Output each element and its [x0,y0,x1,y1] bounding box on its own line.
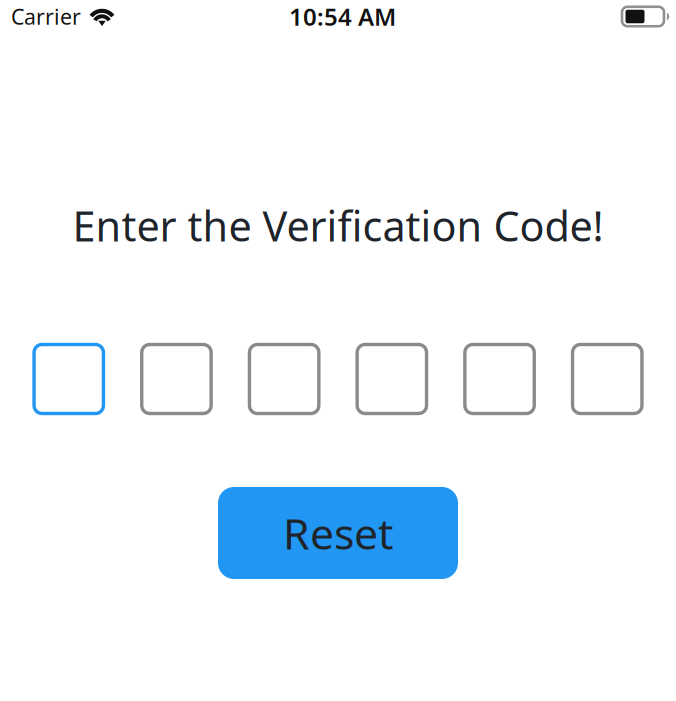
staticText: 10:54 AM [289,1,396,32]
button[interactable]: Verification code digit 5 [465,344,534,413]
button[interactable]: Verification code digit 2 [142,344,211,413]
button[interactable]: Verification code digit 1 [34,344,103,413]
staticText: Enter the Verification Code! [72,198,603,253]
button[interactable]: Verification code digit 6 [572,344,642,413]
staticText: Reset [283,505,393,561]
staticText: Carrier [11,2,81,31]
button[interactable]: Reset [218,487,458,579]
button[interactable]: Verification code digit 4 [357,344,427,413]
button[interactable]: Verification code digit 3 [249,344,319,413]
